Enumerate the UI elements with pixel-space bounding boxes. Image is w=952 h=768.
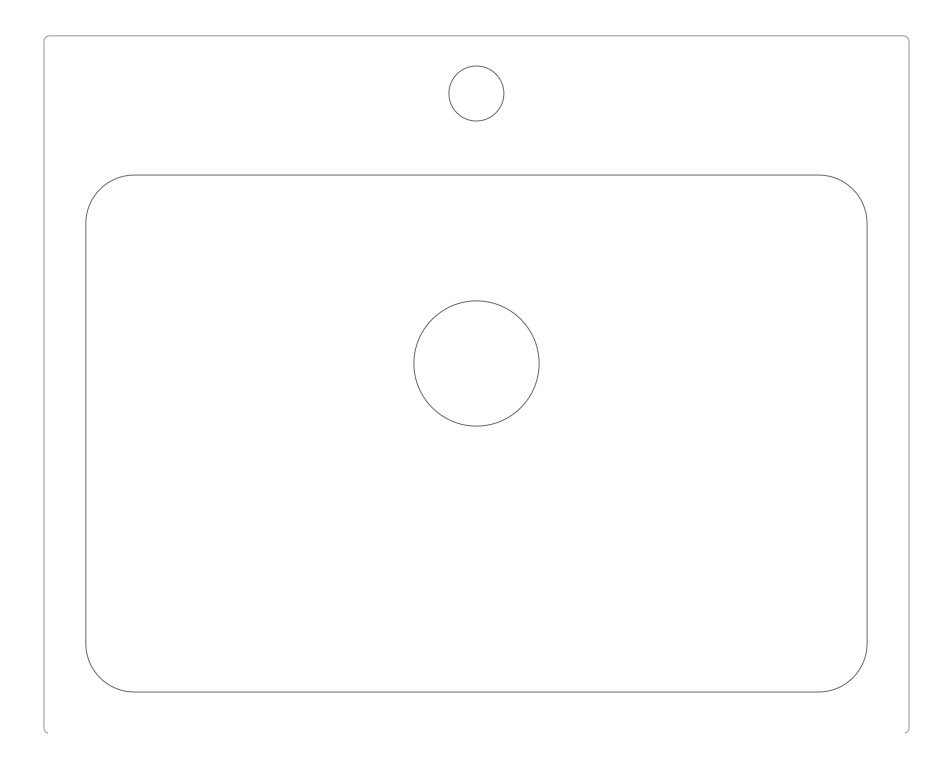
button[interactable]: Tap hole [0, 0, 952, 768]
button[interactable]: Waste outlet [0, 0, 952, 768]
